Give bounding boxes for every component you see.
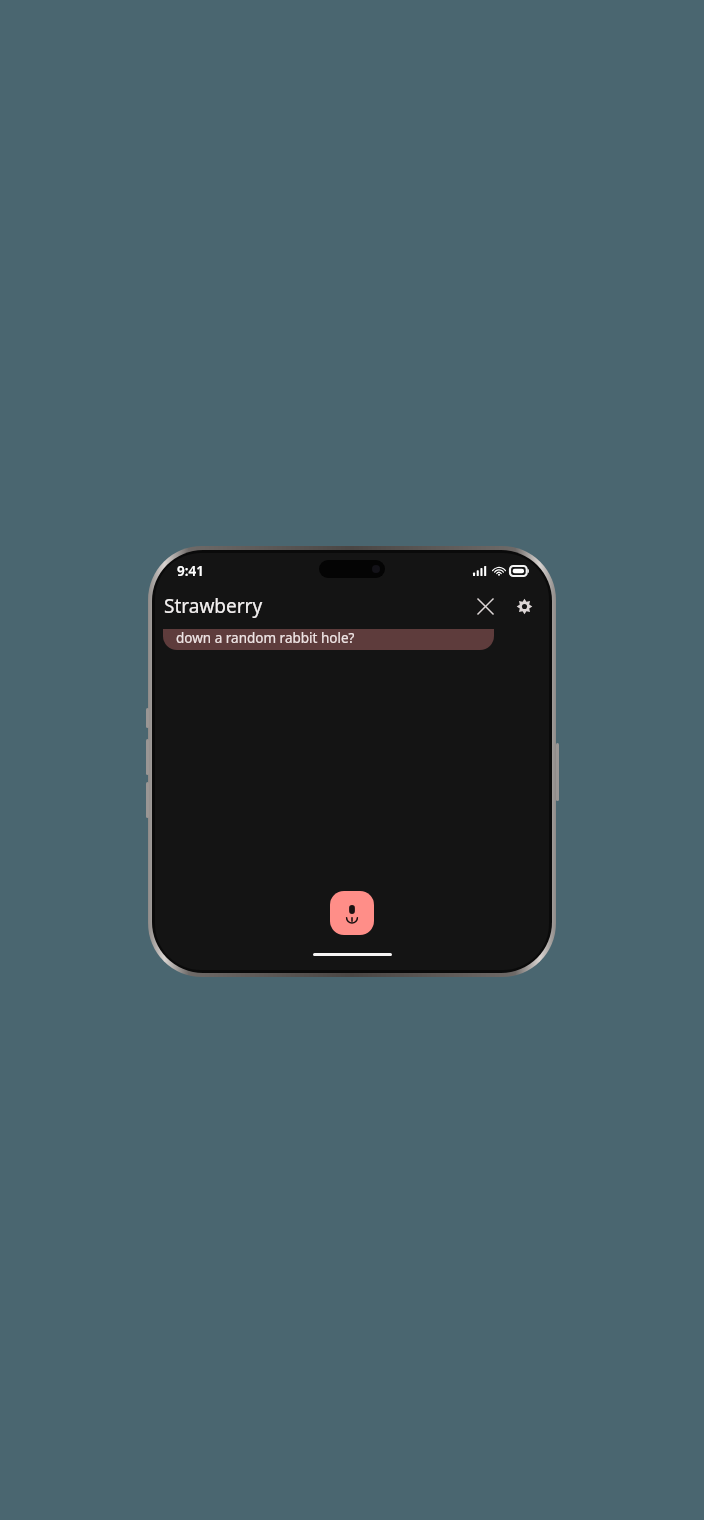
button[interactable]: Settings [507, 589, 541, 623]
button[interactable]: Close [468, 589, 502, 623]
button[interactable]: down a random rabbit hole? [163, 629, 494, 650]
staticText: 9:41 [177, 562, 204, 580]
button[interactable]: Voice input [330, 891, 374, 935]
staticText: down a random rabbit hole? [176, 629, 355, 647]
staticText: Strawberry [164, 593, 263, 619]
